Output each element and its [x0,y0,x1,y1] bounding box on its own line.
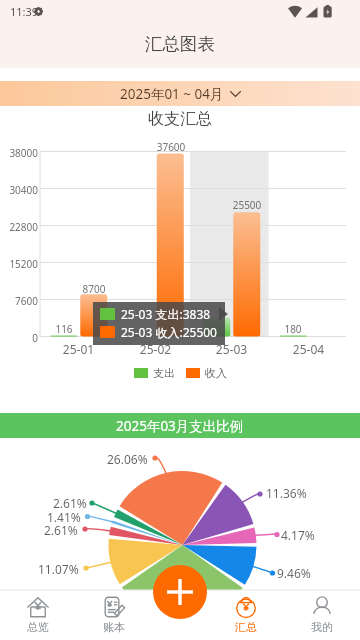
staticText: 116 [34,322,94,336]
staticText: 26.06% [107,451,148,467]
staticText: 1.41% [47,509,81,525]
staticText: 25500 [217,198,277,212]
staticText: 25-02 [117,341,194,357]
staticText: 0 [0,331,38,345]
button[interactable]: 我的 [286,590,358,640]
staticText: 账本 [103,620,125,634]
staticText: 38000 [0,146,38,160]
button[interactable]: 总览 [2,590,74,640]
staticText: 汇总图表 [145,33,215,55]
staticText: 2025年01 ~ 04月 [120,85,224,103]
staticText: 汇总 [235,620,257,634]
staticText: 2.61% [53,495,87,511]
staticText: 30400 [0,183,38,197]
staticText: 11.36% [266,485,307,501]
staticText: 15200 [0,257,38,271]
staticText: 7600 [0,294,38,308]
staticText: 4.17% [281,527,315,543]
staticText: 2025年03月支出比例 [116,417,244,435]
staticText: 25-01 [40,341,117,357]
staticText: 收支汇总 [148,109,212,129]
staticText: 11:39 [10,4,39,19]
staticText: 9.46% [277,565,311,581]
staticText: 22800 [0,220,38,234]
staticText: 收入 [205,366,227,380]
staticText: 我的 [311,620,333,634]
staticText: 11.07% [38,561,79,577]
staticText: 37600 [141,140,201,154]
staticText: 25-03 收入:25500 [121,324,217,340]
staticText: 25-03 支出:3838 [121,306,211,322]
staticText: 支出 [153,366,175,380]
staticText: 180 [263,322,323,336]
button[interactable]: 汇总 [210,590,282,640]
button[interactable]: Add record [153,565,207,619]
staticText: 25-04 [270,341,347,357]
staticText: 25-03 [193,341,270,357]
staticText: 2.61% [44,522,78,538]
staticText: 总览 [27,620,49,634]
button[interactable]: 账本 [78,590,150,640]
button[interactable]: 2025年01 ~ 04月 [0,81,360,106]
button[interactable]: 2025年03月支出比例 [0,413,360,438]
staticText: 8700 [64,282,124,296]
